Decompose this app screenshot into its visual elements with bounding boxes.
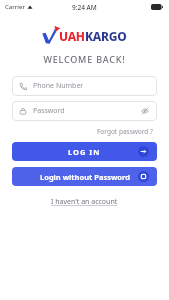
button[interactable]: Phone Number	[12, 76, 157, 96]
staticText: Password	[33, 106, 140, 116]
staticText: WELCOME BACK!	[0, 53, 169, 65]
button[interactable]: I haven't an account	[48, 194, 121, 210]
staticText: LOG IN	[68, 147, 101, 157]
button[interactable]: Forgot password ?	[95, 125, 155, 138]
staticText: Login without Password	[40, 172, 130, 182]
staticText: Carrier	[5, 3, 25, 11]
button[interactable]: LOG IN	[12, 142, 157, 161]
button[interactable]: Login without Password	[12, 167, 157, 186]
button[interactable]: Password	[12, 101, 157, 121]
button[interactable]: Show password	[140, 106, 150, 116]
staticText: KARGO	[85, 28, 127, 44]
staticText: Phone Number	[33, 81, 150, 91]
staticText: 9:24 AM	[72, 3, 97, 12]
staticText: UAH	[59, 28, 85, 44]
